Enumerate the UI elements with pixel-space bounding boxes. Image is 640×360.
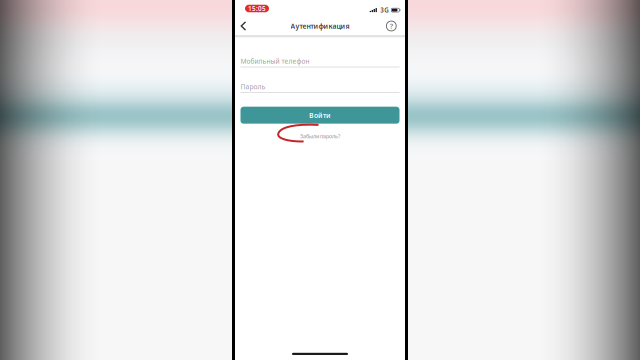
staticText: Забыли пароль? (300, 132, 340, 140)
staticText: Пароль (240, 82, 265, 91)
staticText: ? (390, 21, 393, 31)
button[interactable]: Back (235, 17, 257, 35)
staticText: Войти (309, 110, 331, 120)
button[interactable]: Help (379, 17, 405, 35)
button[interactable]: Забыли пароль? (300, 131, 340, 142)
staticText: 3G (380, 6, 388, 14)
staticText: Аутентификация (290, 21, 349, 31)
staticText: Мобильный телефон (240, 57, 309, 66)
staticText: 15:05 (248, 4, 266, 13)
button[interactable]: Войти (240, 107, 399, 124)
